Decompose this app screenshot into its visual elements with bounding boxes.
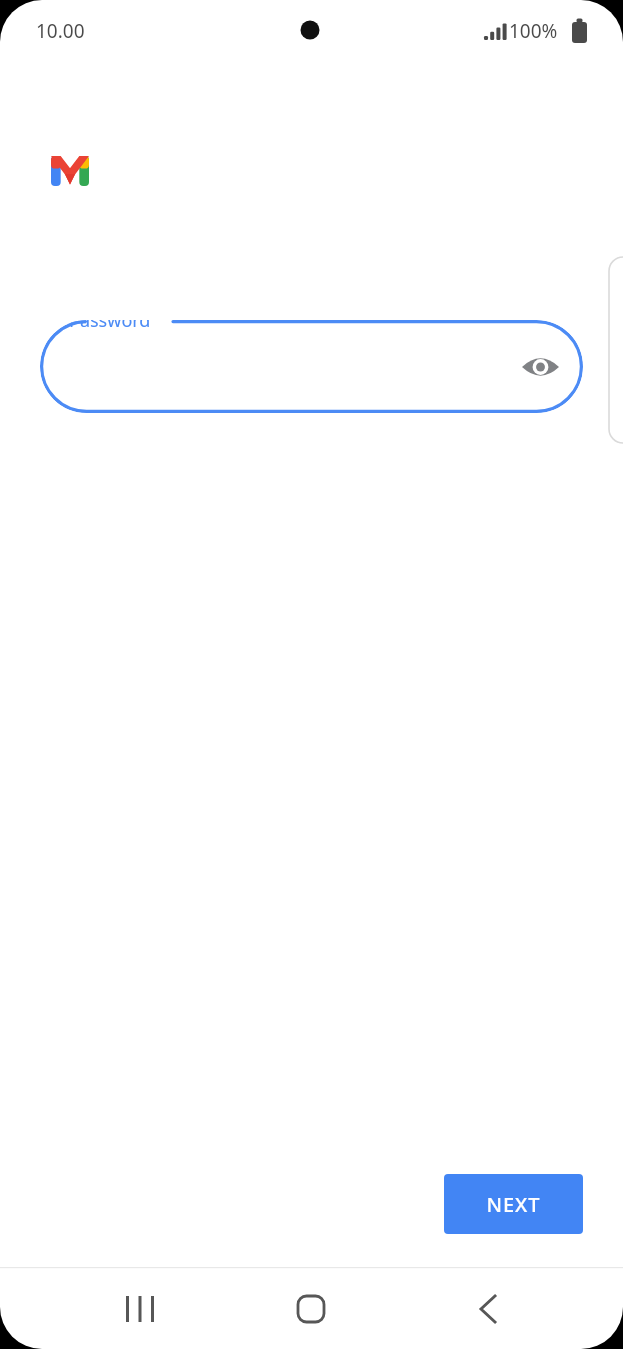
- button[interactable]: Home: [271, 1271, 351, 1347]
- button[interactable]: Back: [448, 1271, 528, 1347]
- staticText: 100%: [509, 18, 558, 44]
- button[interactable]: Password: [40, 320, 583, 413]
- button[interactable]: NEXT: [444, 1174, 583, 1234]
- button[interactable]: Show password: [518, 345, 562, 389]
- staticText: NEXT: [486, 1191, 541, 1218]
- button[interactable]: Recents: [100, 1271, 180, 1347]
- staticText: 10.00: [36, 18, 85, 44]
- staticText: Password: [69, 320, 151, 333]
